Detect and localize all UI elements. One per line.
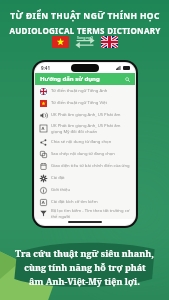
- staticText: Cài đặt kích cỡ tìm kiếm: [51, 199, 130, 205]
- staticText: Cài đặt: [51, 175, 130, 181]
- other: UK flag: [101, 36, 118, 48]
- staticText: Từ điển thuật ngữ Tiếng Việt: [51, 100, 130, 106]
- staticText: cùng tính năng hỗ trợ phát: [24, 261, 146, 273]
- button[interactable]: Từ điển thuật ngữ Tiếng Việt: [35, 97, 135, 109]
- button[interactable]: Cài đặt kích cỡ tìm kiếm: [35, 196, 135, 208]
- other: Search: [125, 77, 130, 82]
- staticText: Hướng dẫn sử dụng: [40, 75, 100, 83]
- button[interactable]: Giao diện tiêu từ bài chính điển của ứng…: [35, 160, 135, 172]
- staticText: 9:41: [41, 65, 50, 71]
- staticText: âm Anh-Việt-Mỹ tiện lợi.: [29, 275, 140, 287]
- button[interactable]: Giới thiệu: [35, 184, 135, 196]
- staticText: Song ngữ: [77, 35, 93, 40]
- button[interactable]: Cài đặt: [35, 172, 135, 184]
- staticText: Bộ lọc tìm kiếm - Tìm theo tất trường cơ…: [51, 208, 130, 219]
- button[interactable]: Bộ lọc tìm kiếm - Tìm theo tất trường cơ…: [35, 208, 135, 219]
- staticText: Chia sẻ nội dung từ đang chọn: [51, 139, 130, 145]
- staticText: Tra cứu thuật ngữ siêu nhanh,: [15, 247, 154, 259]
- staticText: Sao chép nội dung từ đang chọn: [51, 151, 130, 157]
- staticText: AUDIOLOGICAL TERMS DICTIONARY: [9, 25, 161, 36]
- staticText: Giao diện tiêu từ bài chính điển của ứng…: [51, 163, 130, 169]
- staticText: UK Phát âm giọng Anh, US Phát âm giọng M…: [51, 112, 130, 118]
- button[interactable]: Chia sẻ nội dung từ đang chọn: [35, 136, 135, 148]
- other: Vietnamese flag: [52, 36, 69, 48]
- staticText: Giới thiệu: [51, 187, 130, 193]
- button[interactable]: UK Phát âm giọng Anh, US Phát âm giọng M…: [35, 121, 135, 136]
- staticText: UK Phát âm giọng Anh, US Phát âm giọng M…: [51, 123, 130, 135]
- staticText: Từ điển thuật ngữ Tiếng Anh: [51, 88, 130, 94]
- button[interactable]: Hướng dẫn sử dụng: [35, 73, 135, 85]
- button[interactable]: Từ điển thuật ngữ Tiếng Anh: [35, 85, 135, 97]
- staticText: TỪ ĐIỂN THUẬT NGỮ THÍNH HỌC: [10, 10, 160, 22]
- button[interactable]: UK Phát âm giọng Anh, US Phát âm giọng M…: [35, 109, 135, 121]
- button[interactable]: Sao chép nội dung từ đang chọn: [35, 148, 135, 160]
